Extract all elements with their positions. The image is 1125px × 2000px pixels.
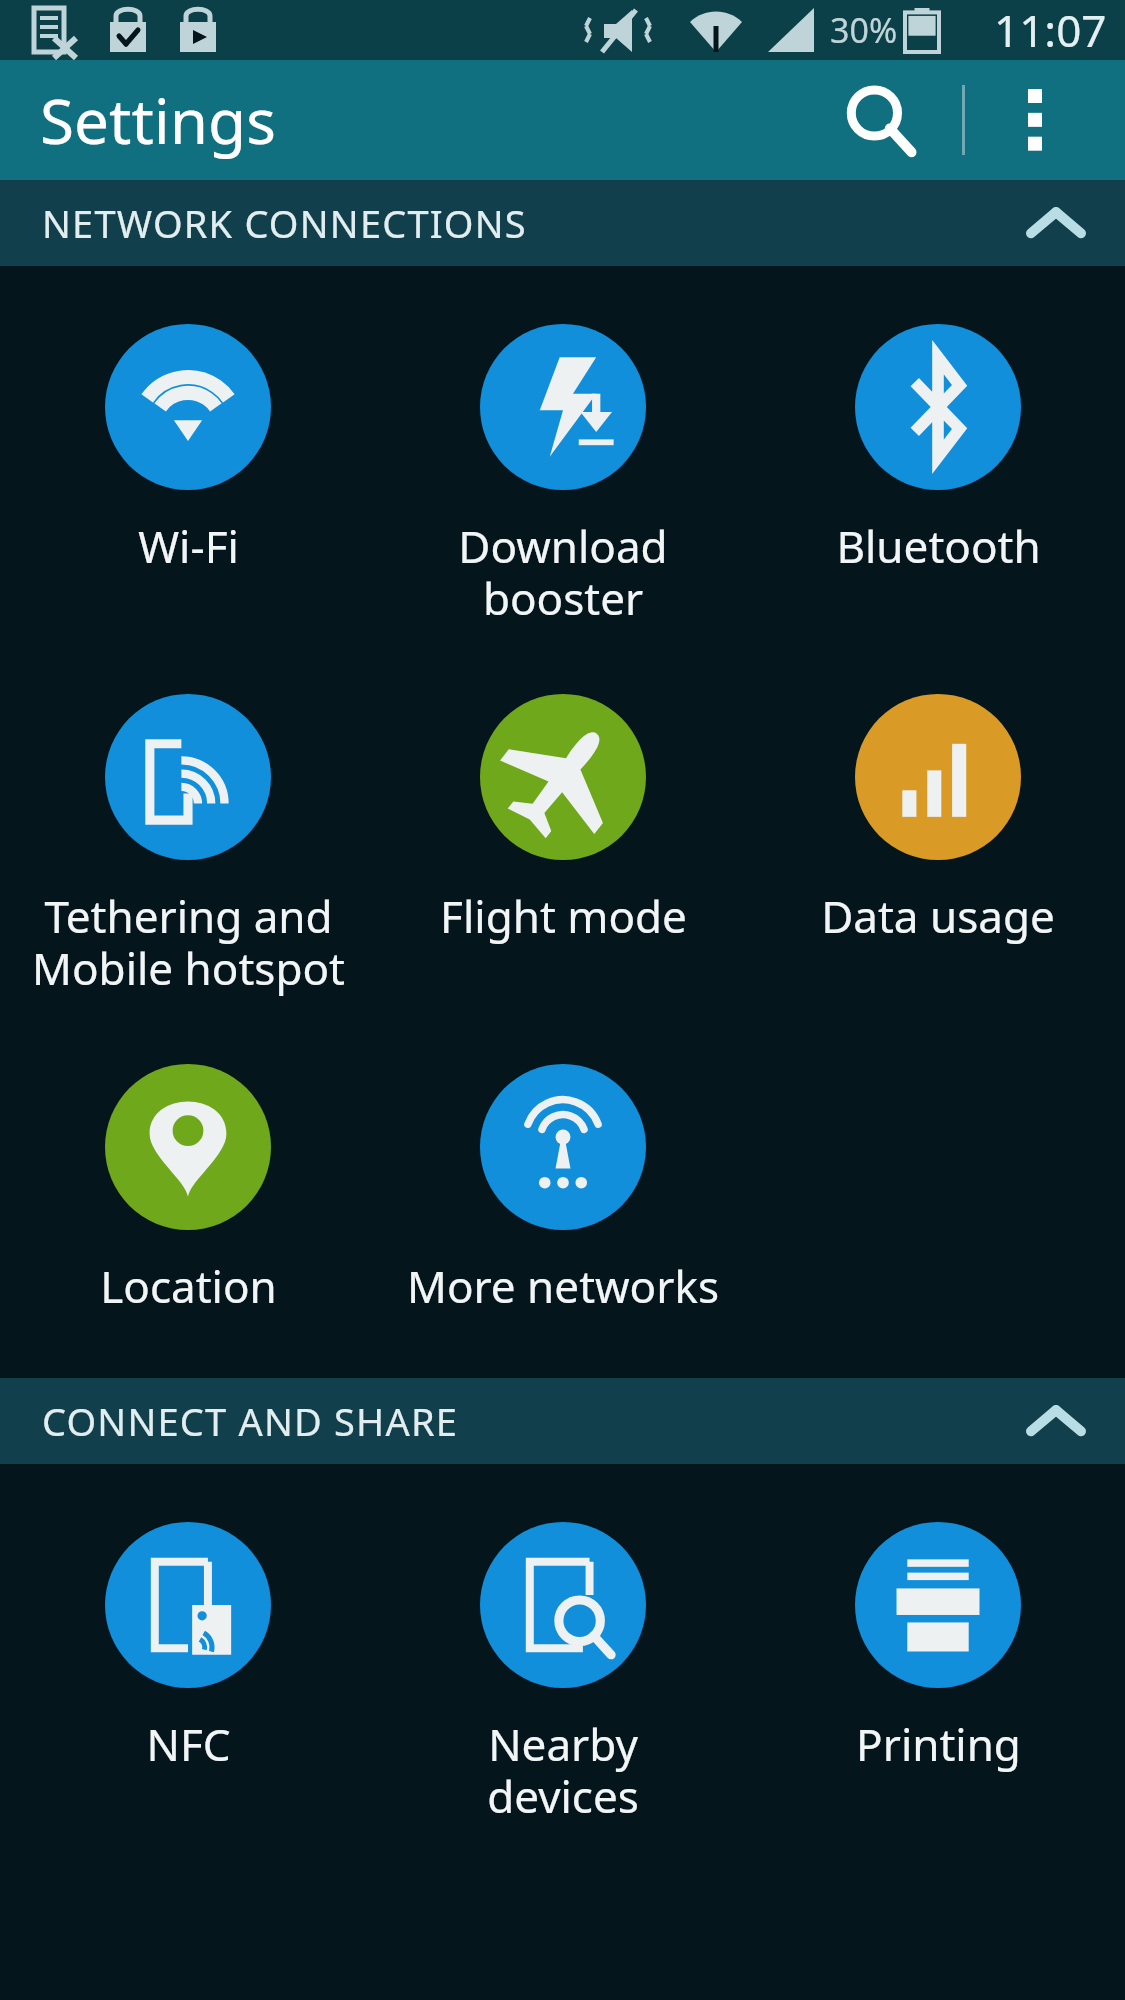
staticText: Download booster — [458, 516, 668, 628]
button[interactable]: More networks — [398, 1062, 728, 1316]
button[interactable]: Nearby devices — [398, 1520, 728, 1826]
staticText: Settings — [40, 78, 276, 162]
button[interactable]: Search — [825, 65, 935, 175]
staticText: Wi-Fi — [138, 516, 239, 576]
button[interactable]: Location — [23, 1062, 353, 1316]
staticText: More networks — [407, 1256, 719, 1316]
button[interactable]: Printing — [773, 1520, 1103, 1774]
staticText: Flight mode — [440, 886, 687, 946]
staticText: 30% — [830, 7, 898, 53]
staticText: NETWORK CONNECTIONS — [42, 197, 527, 249]
button[interactable]: NETWORK CONNECTIONS — [0, 180, 1125, 266]
staticText: Location — [100, 1256, 277, 1316]
button[interactable]: Flight mode — [398, 692, 728, 946]
button[interactable]: Tethering and Mobile hotspot — [23, 692, 353, 998]
staticText: Bluetooth — [836, 516, 1041, 576]
staticText: NFC — [146, 1714, 231, 1774]
button[interactable]: NFC — [23, 1520, 353, 1774]
staticText: CONNECT AND SHARE — [42, 1395, 459, 1447]
staticText: Nearby devices — [487, 1714, 639, 1826]
staticText: 11:07 — [994, 0, 1107, 60]
staticText: Printing — [856, 1714, 1021, 1774]
button[interactable]: CONNECT AND SHARE — [0, 1378, 1125, 1464]
button[interactable]: Wi-Fi — [23, 322, 353, 576]
button[interactable]: Download booster — [398, 322, 728, 628]
button[interactable]: Data usage — [773, 692, 1103, 946]
staticText: Data usage — [821, 886, 1055, 946]
staticText: Tethering and Mobile hotspot — [32, 886, 345, 998]
button[interactable]: Bluetooth — [773, 322, 1103, 576]
button[interactable]: More options — [985, 70, 1085, 170]
